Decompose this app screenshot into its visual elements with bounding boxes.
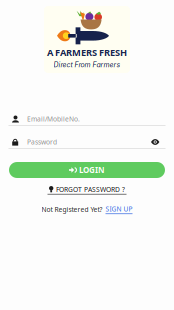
staticText: Not Registered Yet? bbox=[41, 205, 102, 214]
staticText: FORGOT PASSWORD ? bbox=[56, 185, 125, 194]
staticText: LOGIN bbox=[79, 165, 105, 175]
staticText: Email/MobileNo. bbox=[27, 115, 80, 123]
staticText: A FARMERS FRESH bbox=[47, 46, 127, 58]
button[interactable]: SIGN UP bbox=[105, 205, 132, 214]
button[interactable]: FORGOT PASSWORD ? bbox=[47, 185, 126, 195]
staticText: Direct From Farmers bbox=[53, 60, 120, 69]
staticText: Password bbox=[27, 138, 57, 146]
button[interactable]: LOGIN bbox=[9, 162, 165, 178]
button[interactable]: Show password bbox=[151, 139, 174, 145]
staticText: SIGN UP bbox=[105, 205, 132, 213]
